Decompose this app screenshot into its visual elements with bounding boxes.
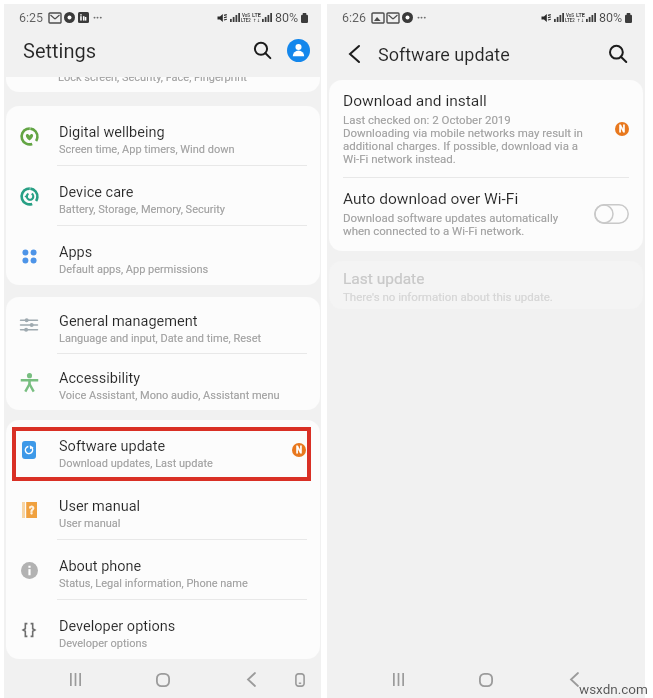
- staticText: N: [296, 445, 303, 455]
- button[interactable]: Accessibility: [6, 354, 320, 410]
- button[interactable]: Recents: [48, 657, 102, 698]
- staticText: There's no information about this update…: [343, 290, 553, 303]
- staticText: LTE2: [241, 18, 251, 23]
- staticText: wsxdn.com: [579, 681, 648, 697]
- staticText: Battery, Storage, Memory, Security: [59, 203, 226, 216]
- staticText: Device care: [59, 184, 134, 201]
- staticText: Auto download over Wi-Fi: [343, 190, 519, 208]
- button[interactable]: Switch device: [279, 657, 321, 698]
- staticText: Developer options: [59, 618, 176, 635]
- staticText: User manual: [59, 498, 141, 515]
- button[interactable]: Developer options: [6, 600, 320, 659]
- staticText: 6:26: [342, 10, 367, 25]
- staticText: LTE2: [565, 18, 575, 23]
- staticText: ···: [417, 11, 427, 24]
- button[interactable]: Back: [547, 657, 601, 698]
- staticText: 80%: [275, 10, 299, 25]
- staticText: Status, Legal information, Phone name: [59, 577, 248, 590]
- staticText: User manual: [59, 517, 121, 530]
- staticText: Default apps, App permissions: [59, 263, 209, 276]
- staticText: Software update: [378, 44, 510, 65]
- staticText: VoS: [566, 13, 575, 18]
- staticText: Voice Assistant, Mono audio, Assistant m…: [59, 389, 280, 402]
- staticText: General management: [59, 313, 198, 330]
- staticText: 80%: [599, 10, 623, 25]
- button[interactable]: Download and install: [329, 80, 643, 177]
- button[interactable]: ?: [6, 480, 320, 539]
- staticText: additional charges. If possible, downloa…: [343, 139, 579, 152]
- button[interactable]: Back: [224, 657, 278, 698]
- staticText: Settings: [23, 39, 97, 62]
- staticText: Wi-Fi network instead.: [343, 152, 456, 165]
- staticText: Accessibility: [59, 370, 141, 387]
- staticText: LTE: [576, 12, 585, 18]
- staticText: ?: [29, 504, 35, 517]
- button[interactable]: Digital wellbeing: [6, 106, 320, 165]
- button[interactable]: Auto download over Wi-Fi: [329, 178, 643, 251]
- staticText: Digital wellbeing: [59, 124, 165, 141]
- button[interactable]: Search: [246, 34, 278, 66]
- button[interactable]: Account: [287, 39, 310, 62]
- staticText: N: [619, 124, 626, 134]
- button[interactable]: General management: [6, 297, 320, 353]
- button[interactable]: Device care: [6, 166, 320, 225]
- button[interactable]: Apps: [6, 226, 320, 285]
- staticText: ↑↓: [253, 18, 261, 23]
- button[interactable]: Home: [136, 657, 190, 698]
- staticText: Developer options: [59, 637, 148, 650]
- staticText: Download and install: [343, 92, 487, 110]
- staticText: Last checked on: 2 October 2019: [343, 113, 511, 126]
- staticText: Software update: [59, 438, 166, 455]
- staticText: Download updates, Last update: [59, 457, 213, 470]
- staticText: Language and input, Date and time, Reset: [59, 332, 262, 345]
- button[interactable]: Search: [603, 39, 633, 69]
- button[interactable]: Auto download over Wi-Fi: [594, 204, 629, 224]
- staticText: Downloading via mobile networks may resu…: [343, 126, 583, 139]
- staticText: ···: [93, 11, 103, 24]
- staticText: ↑↓: [577, 18, 585, 23]
- button[interactable]: Software update: [6, 420, 320, 479]
- staticText: Apps: [59, 244, 93, 261]
- staticText: LTE: [252, 12, 261, 18]
- staticText: Screen time, App timers, Wind down: [59, 143, 235, 156]
- staticText: Lock screen, Security, Face, Fingerprint: [58, 77, 247, 84]
- button[interactable]: Recents: [371, 657, 425, 698]
- staticText: VoS: [242, 13, 251, 18]
- button[interactable]: Back: [339, 39, 369, 69]
- staticText: when connected to a Wi-Fi network.: [343, 224, 525, 237]
- staticText: Download software updates automatically: [343, 211, 559, 224]
- staticText: 6:25: [19, 10, 44, 25]
- staticText: Last update: [343, 270, 425, 288]
- staticText: About phone: [59, 558, 142, 575]
- button[interactable]: About phone: [6, 540, 320, 599]
- button[interactable]: Home: [459, 657, 513, 698]
